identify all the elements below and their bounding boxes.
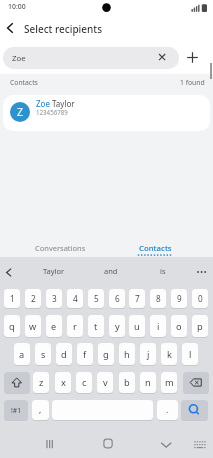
- staticText: a: [19, 348, 25, 361]
- button[interactable]: 7: [129, 289, 145, 308]
- button[interactable]: and: [90, 263, 132, 278]
- button[interactable]: [40, 436, 59, 452]
- staticText: 8: [156, 293, 161, 304]
- button[interactable]: j: [140, 343, 156, 365]
- staticText: 123456789: [36, 108, 68, 116]
- staticText: y: [115, 320, 120, 333]
- staticText: Taylor: [43, 266, 65, 276]
- staticText: j: [147, 348, 150, 361]
- button[interactable]: f: [77, 343, 93, 365]
- staticText: Contacts: [10, 78, 38, 87]
- staticText: o: [176, 320, 182, 333]
- button[interactable]: [2, 20, 18, 36]
- staticText: x: [61, 376, 66, 389]
- button[interactable]: [192, 437, 209, 452]
- staticText: b: [124, 376, 130, 389]
- staticText: and: [104, 266, 118, 276]
- button[interactable]: p: [192, 315, 208, 337]
- button[interactable]: [181, 400, 208, 420]
- button[interactable]: s: [35, 343, 51, 365]
- button[interactable]: e: [46, 315, 62, 337]
- button[interactable]: [2, 266, 15, 279]
- button[interactable]: n: [140, 372, 156, 393]
- staticText: Zoe Taylor: [36, 98, 75, 109]
- button[interactable]: Contacts: [105, 240, 205, 256]
- button[interactable]: 0: [192, 289, 208, 308]
- button[interactable]: Conversations: [10, 240, 110, 256]
- staticText: 6: [115, 293, 120, 304]
- staticText: Zoe: [12, 53, 26, 64]
- button[interactable]: [183, 372, 209, 393]
- staticText: i: [157, 320, 160, 333]
- button[interactable]: Taylor: [24, 263, 84, 278]
- staticText: u: [134, 320, 140, 333]
- staticText: 3: [52, 293, 57, 304]
- staticText: 5: [94, 293, 99, 304]
- button[interactable]: h: [119, 343, 135, 365]
- button[interactable]: k: [161, 343, 177, 365]
- button[interactable]: r: [67, 315, 83, 337]
- button[interactable]: a: [14, 343, 30, 365]
- staticText: 10:00: [8, 2, 26, 11]
- button[interactable]: z: [33, 372, 49, 393]
- button[interactable]: v: [97, 372, 113, 393]
- staticText: n: [145, 376, 151, 389]
- button[interactable]: x: [55, 372, 71, 393]
- button[interactable]: .: [157, 400, 178, 420]
- button[interactable]: [158, 437, 175, 451]
- button[interactable]: u: [129, 315, 145, 337]
- button[interactable]: 2: [25, 289, 41, 308]
- button[interactable]: l: [182, 343, 198, 365]
- staticText: 4: [73, 293, 78, 304]
- button[interactable]: 6: [109, 289, 125, 308]
- button[interactable]: 5: [88, 289, 104, 308]
- button[interactable]: [3, 95, 210, 131]
- staticText: Z: [17, 105, 24, 119]
- button[interactable]: d: [56, 343, 72, 365]
- button[interactable]: 9: [171, 289, 187, 308]
- staticText: !#1: [11, 406, 22, 415]
- staticText: Select recipients: [24, 22, 102, 36]
- button[interactable]: 4: [67, 289, 83, 308]
- staticText: s: [41, 348, 46, 361]
- button[interactable]: t: [88, 315, 104, 337]
- staticText: r: [73, 320, 77, 333]
- button[interactable]: is: [145, 263, 181, 278]
- button[interactable]: Zoe: [3, 47, 179, 69]
- button[interactable]: q: [4, 315, 20, 337]
- staticText: 7: [135, 293, 140, 304]
- button[interactable]: m: [161, 372, 177, 393]
- button[interactable]: w: [25, 315, 41, 337]
- staticText: f: [83, 348, 87, 361]
- staticText: c: [82, 376, 87, 389]
- button[interactable]: c: [76, 372, 92, 393]
- staticText: ,: [39, 404, 42, 416]
- button[interactable]: 1: [4, 289, 20, 308]
- button[interactable]: 8: [150, 289, 166, 308]
- staticText: p: [197, 320, 203, 333]
- staticText: k: [167, 348, 172, 361]
- staticText: q: [9, 320, 15, 333]
- button[interactable]: 3: [46, 289, 62, 308]
- staticText: Conversations: [35, 243, 86, 253]
- button[interactable]: o: [171, 315, 187, 337]
- button[interactable]: [4, 372, 30, 393]
- staticText: 2: [31, 293, 36, 304]
- staticText: is: [160, 266, 166, 276]
- button[interactable]: [186, 51, 199, 64]
- button[interactable]: g: [98, 343, 114, 365]
- staticText: 1: [10, 293, 15, 304]
- staticText: g: [103, 348, 109, 361]
- button[interactable]: !#1: [4, 400, 28, 420]
- button[interactable]: [156, 51, 168, 63]
- button[interactable]: y: [109, 315, 125, 337]
- button[interactable]: [99, 435, 117, 452]
- button[interactable]: ,: [32, 400, 49, 420]
- button[interactable]: b: [119, 372, 135, 393]
- staticText: m: [165, 376, 174, 389]
- staticText: z: [39, 376, 44, 389]
- staticText: e: [51, 320, 57, 333]
- staticText: h: [124, 348, 130, 361]
- button[interactable]: i: [150, 315, 166, 337]
